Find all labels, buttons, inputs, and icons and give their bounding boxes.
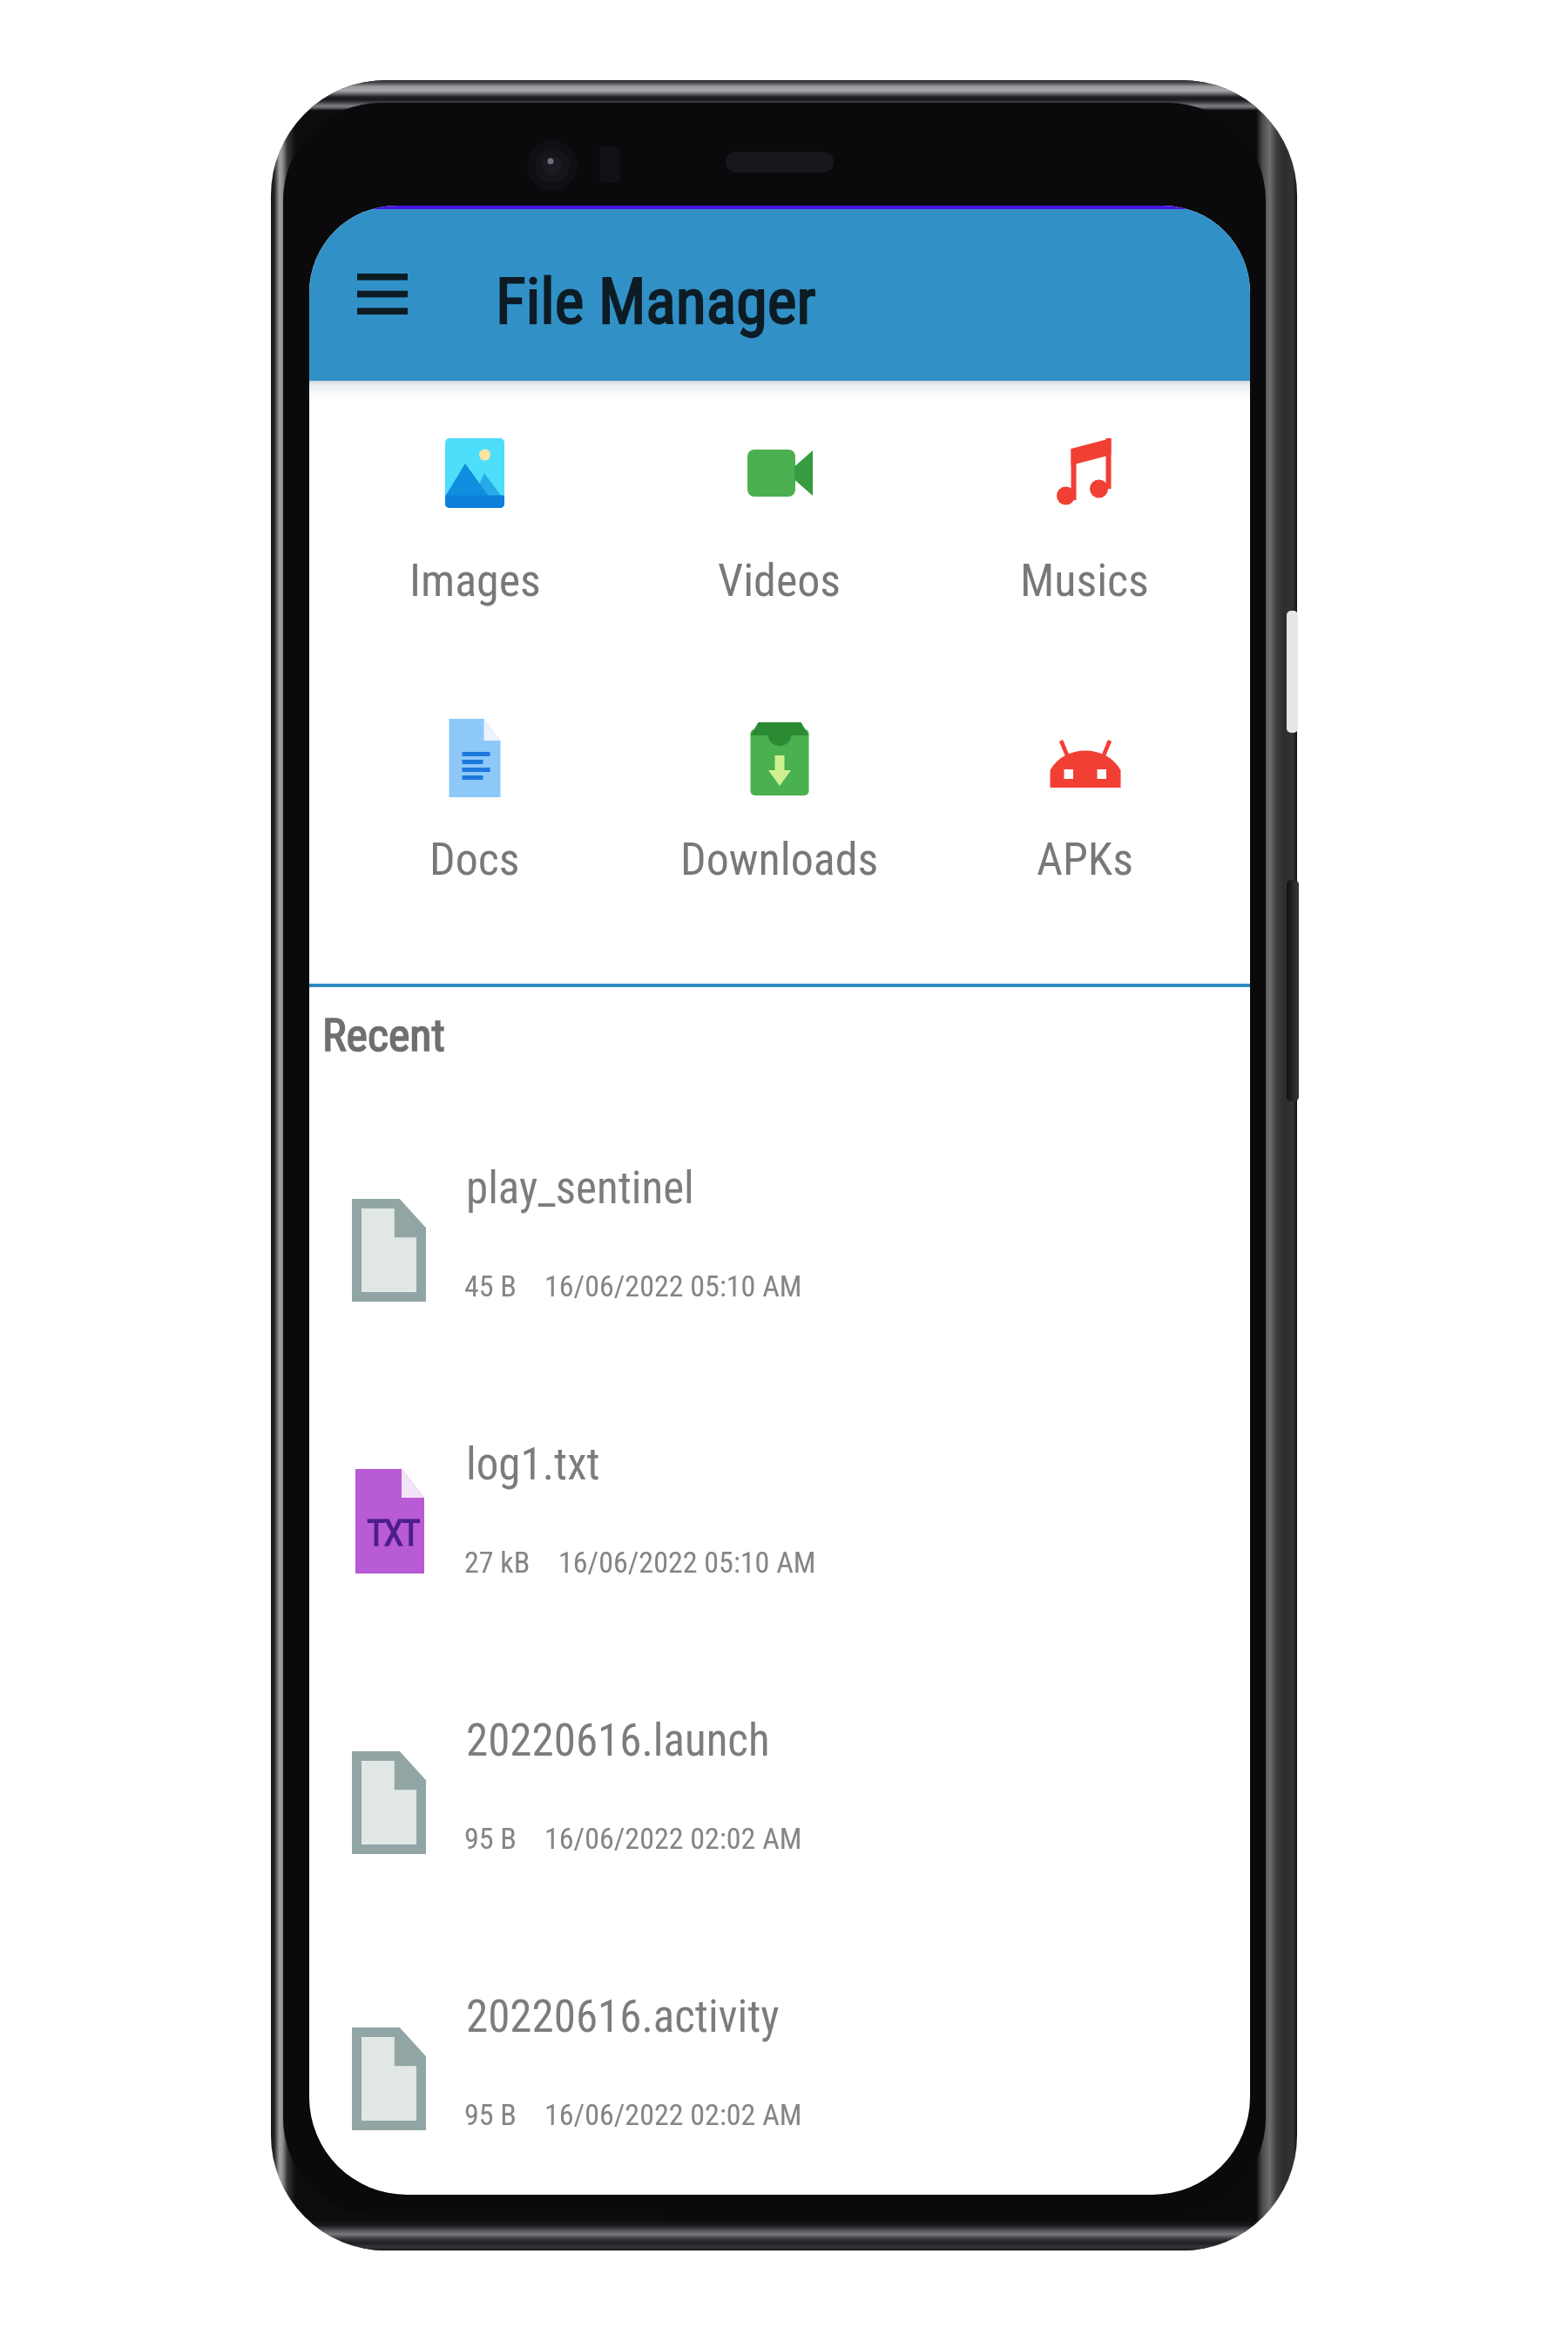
staticText: 27 kB: [464, 1545, 531, 1580]
button[interactable]: APKs: [928, 688, 1241, 924]
staticText: Musics: [1020, 554, 1149, 607]
staticText: Docs: [429, 833, 520, 886]
button[interactable]: Docs: [318, 688, 632, 924]
staticText: Images: [409, 554, 541, 607]
staticText: Recent: [322, 1009, 445, 1062]
staticText: log1.txt: [466, 1438, 600, 1491]
button[interactable]: Open navigation drawer: [345, 239, 420, 349]
staticText: 95 B: [464, 1821, 517, 1856]
button[interactable]: Images: [318, 409, 632, 645]
staticText: Videos: [718, 554, 841, 607]
staticText: TXT: [367, 1512, 419, 1554]
staticText: 16/06/2022 05:10 AM: [558, 1545, 816, 1580]
button[interactable]: Musics: [928, 409, 1241, 645]
staticText: 20220616.launch: [466, 1715, 770, 1767]
staticText: 20220616.activity: [466, 1991, 780, 2043]
button[interactable]: 20220616.activity: [309, 1991, 1250, 2195]
staticText: 16/06/2022 02:02 AM: [544, 1821, 802, 1856]
staticText: File Manager: [496, 265, 816, 338]
staticText: 16/06/2022 05:10 AM: [544, 1269, 802, 1303]
staticText: 95 B: [464, 2097, 517, 2132]
staticText: Downloads: [680, 833, 879, 886]
staticText: APKs: [1037, 833, 1133, 886]
staticText: 16/06/2022 02:02 AM: [544, 2097, 802, 2132]
staticText: 45 B: [464, 1269, 517, 1303]
button[interactable]: 20220616.launch: [309, 1715, 1250, 1932]
button[interactable]: play_sentinel: [309, 1162, 1250, 1380]
button[interactable]: Videos: [623, 409, 936, 645]
staticText: play_sentinel: [466, 1162, 694, 1215]
button[interactable]: TXT: [309, 1438, 1250, 1656]
button[interactable]: Downloads: [623, 688, 936, 924]
